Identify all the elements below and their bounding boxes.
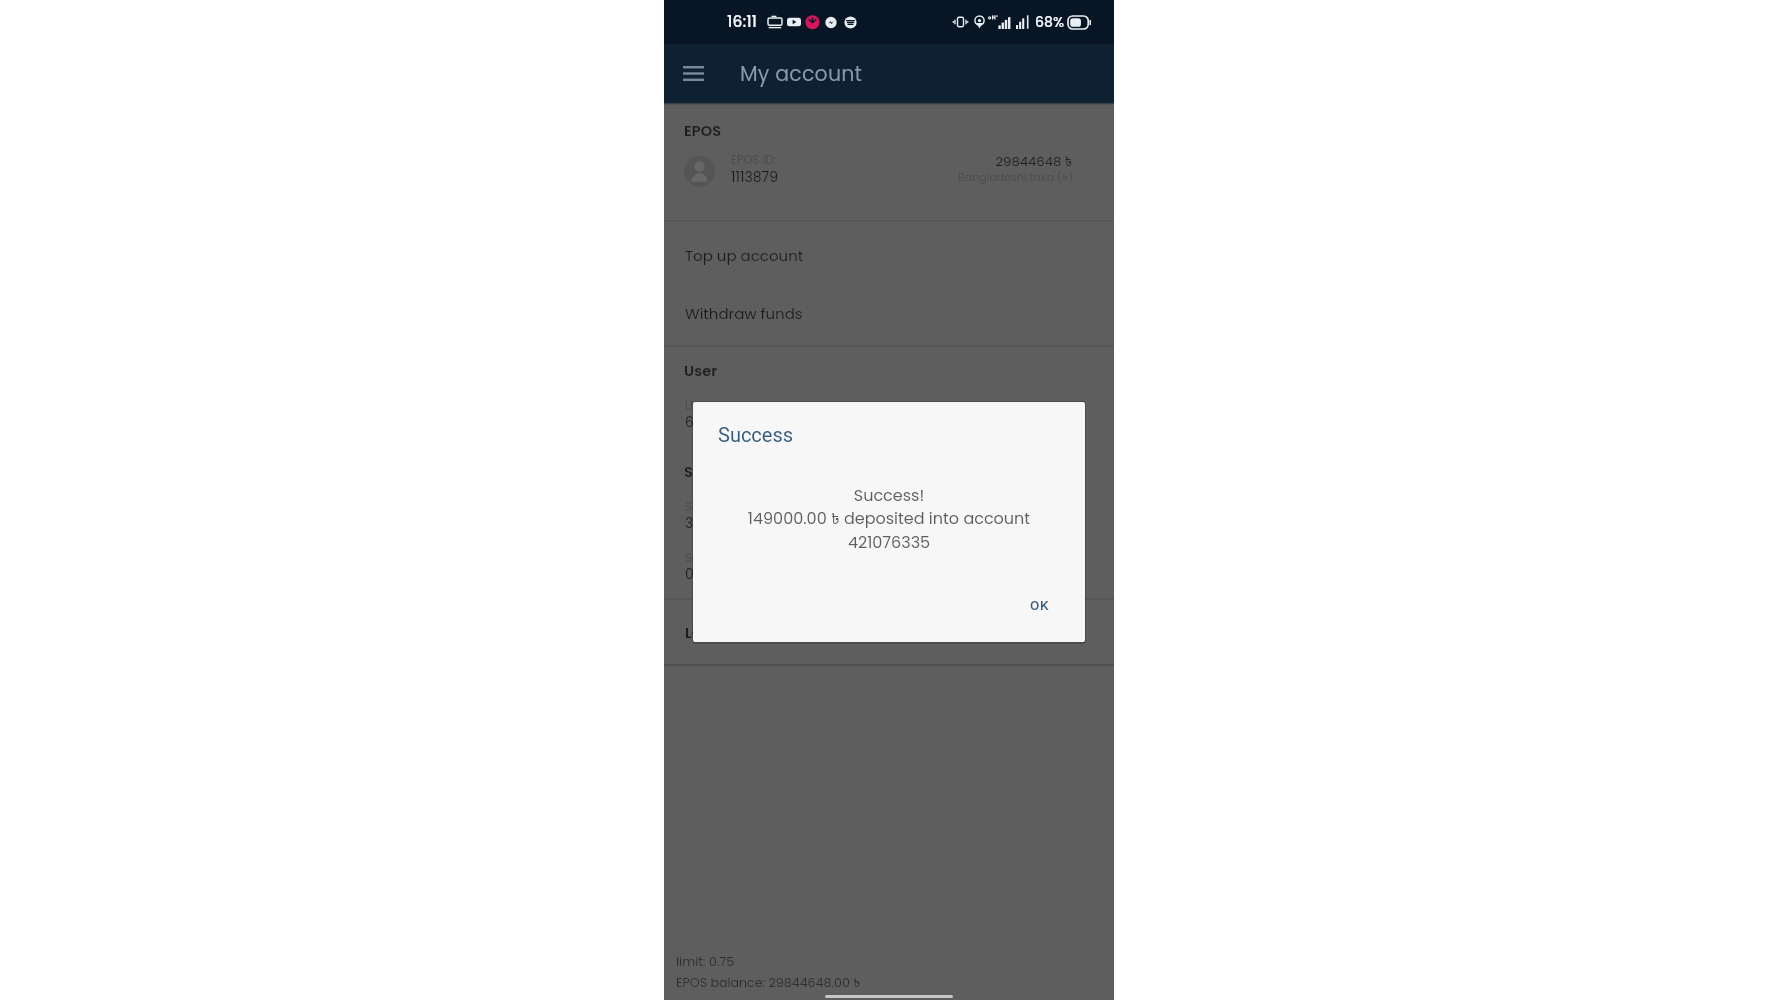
staticText: Success — [718, 423, 794, 446]
button[interactable]: OK — [1020, 591, 1060, 619]
staticText: Sale limit: — [685, 499, 740, 515]
staticText: 3000 — [685, 513, 720, 533]
staticText: 1113879 — [731, 167, 778, 187]
button[interactable]: Withdraw funds — [664, 286, 1114, 344]
staticText: Session time: — [685, 550, 760, 566]
staticText: Settings — [684, 462, 746, 482]
staticText: limit: 0.75 — [676, 953, 735, 971]
staticText: 16:11 — [727, 11, 758, 33]
staticText: EPOS — [684, 121, 722, 141]
staticText: My account — [740, 59, 863, 88]
staticText: Withdraw funds — [685, 303, 803, 324]
staticText: 29844648 ৳ — [995, 152, 1072, 171]
staticText: EPOS balance: 29844648.00 ৳ — [676, 974, 861, 992]
staticText: EPOS ID: — [731, 152, 776, 168]
button[interactable]: Open navigation menu — [669, 49, 717, 97]
staticText: 68% — [1035, 12, 1065, 32]
staticText: Bangladeshi taka (৳) — [958, 169, 1073, 185]
staticText: User — [684, 361, 718, 381]
button[interactable]: LOG OUT — [664, 606, 1114, 658]
staticText: Username: — [685, 398, 747, 414]
staticText: 0 — [685, 564, 694, 584]
staticText: LOG OUT — [685, 623, 749, 643]
staticText: Top up account — [685, 245, 804, 266]
staticText: Success! 149000.00 ৳ deposited into acco… — [703, 484, 1075, 553]
staticText: 62812 — [685, 412, 724, 432]
staticText: OK — [1030, 597, 1050, 613]
button[interactable]: Top up account — [664, 228, 1114, 286]
